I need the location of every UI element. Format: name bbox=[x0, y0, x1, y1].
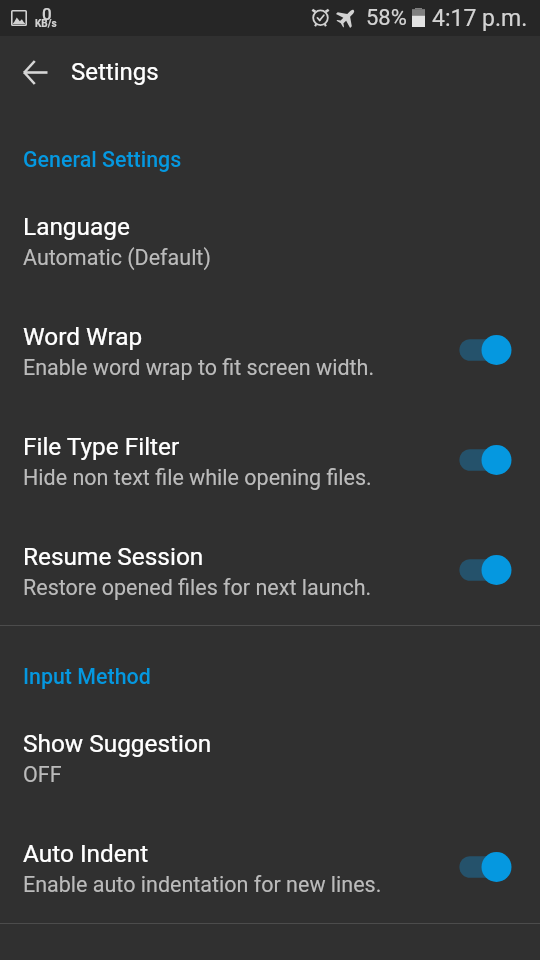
staticText: Show Suggestion bbox=[23, 729, 212, 758]
button[interactable]: Toggle File Type Filter bbox=[450, 429, 522, 491]
staticText: Enable word wrap to fit screen width. bbox=[23, 355, 375, 380]
button[interactable]: Show Suggestion bbox=[0, 694, 540, 798]
staticText: Input Method bbox=[23, 664, 151, 689]
staticText: KB/s bbox=[35, 18, 57, 30]
staticText: Enable auto indentation for new lines. bbox=[23, 872, 382, 897]
staticText: Settings bbox=[71, 58, 159, 86]
button[interactable]: Language bbox=[0, 177, 540, 281]
button[interactable]: Toggle Word Wrap bbox=[450, 319, 522, 381]
staticText: 4:17 p.m. bbox=[432, 5, 528, 32]
staticText: General Settings bbox=[23, 147, 182, 172]
staticText: Restore opened files for next launch. bbox=[23, 575, 372, 600]
staticText: Word Wrap bbox=[23, 322, 143, 351]
staticText: 58% bbox=[366, 5, 407, 31]
button[interactable]: Auto Indent bbox=[0, 804, 540, 908]
staticText: Auto Indent bbox=[23, 839, 149, 868]
staticText: 0 bbox=[42, 4, 52, 24]
staticText: File Type Filter bbox=[23, 432, 180, 461]
button[interactable]: Toggle Auto Indent bbox=[450, 836, 522, 898]
button[interactable]: Toggle Resume Session bbox=[450, 539, 522, 601]
staticText: Automatic (Default) bbox=[23, 245, 211, 270]
button[interactable]: Word Wrap bbox=[0, 287, 540, 391]
staticText: Language bbox=[23, 212, 130, 241]
staticText: Resume Session bbox=[23, 542, 204, 571]
staticText: OFF bbox=[23, 762, 62, 787]
button[interactable]: File Type Filter bbox=[0, 397, 540, 501]
button[interactable]: Resume Session bbox=[0, 507, 540, 611]
staticText: Hide non text file while opening files. bbox=[23, 465, 372, 490]
button[interactable]: Back bbox=[11, 48, 59, 96]
